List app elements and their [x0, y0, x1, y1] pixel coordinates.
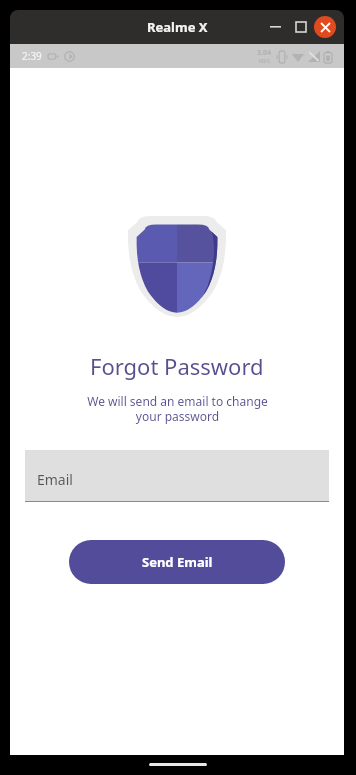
staticText: KB/S [259, 58, 270, 65]
staticText: Send Email [142, 553, 213, 571]
button[interactable]: Maximize [288, 14, 314, 40]
staticText: Forgot Password [90, 351, 264, 381]
staticText: Realme X [147, 18, 208, 36]
button[interactable]: Close [314, 16, 336, 38]
staticText: We will send an email to change your pas… [87, 393, 268, 424]
button[interactable]: Email [25, 450, 329, 502]
button[interactable]: Minimize [262, 14, 288, 40]
staticText: Email [37, 470, 73, 489]
button[interactable]: Send Email [69, 540, 285, 584]
staticText: 3.04 [257, 48, 271, 58]
staticText: 2:39 [22, 49, 42, 63]
